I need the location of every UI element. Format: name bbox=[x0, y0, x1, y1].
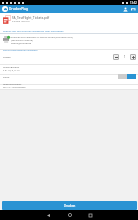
staticText: FA_TestFlight_Tickets.pdf bbox=[12, 16, 50, 20]
button[interactable]: Seiten/Bereich bbox=[0, 64, 138, 75]
button[interactable]: Printer settings bbox=[129, 5, 137, 13]
button[interactable]: alle Druckeroptionen anzeigen bbox=[0, 47, 138, 52]
button[interactable]: Drucken bbox=[2, 201, 137, 210]
staticText: 13:52 bbox=[130, 1, 137, 5]
staticText: Farbe bbox=[3, 75, 10, 78]
button[interactable]: Recents bbox=[80, 210, 101, 220]
button[interactable]: Increase copies bbox=[130, 54, 136, 60]
staticText: 1 bbox=[124, 55, 126, 59]
staticText: Seiten/Bereich bbox=[3, 65, 20, 68]
button[interactable]: Kopien bbox=[0, 50, 138, 64]
staticText: z. B. 1-5, 8, 11-13 bbox=[3, 69, 20, 72]
staticText: Material/Format bbox=[3, 82, 22, 85]
staticText: DruckerPlug bbox=[9, 7, 28, 11]
button[interactable]: Decrease copies bbox=[113, 54, 119, 60]
staticText: Kopien bbox=[3, 55, 11, 58]
button[interactable]: Material/Format bbox=[0, 84, 138, 89]
button[interactable]: Farbe bbox=[0, 74, 138, 84]
button[interactable]: Home bbox=[59, 210, 80, 220]
button[interactable]: Back bbox=[38, 210, 59, 220]
staticText: Drucken auf Samsung SL-M2070 Series (SEC… bbox=[11, 35, 73, 38]
staticText: admin@printer.de bbox=[11, 41, 32, 44]
staticText: DIN A4 / Normalpapier bbox=[3, 86, 26, 89]
button[interactable]: Account bbox=[121, 5, 129, 13]
staticText: andere App zum Drucken auswählen oder hi… bbox=[3, 29, 64, 32]
button[interactable]: Color toggle bbox=[118, 74, 136, 79]
staticText: Drucken bbox=[64, 204, 76, 208]
button[interactable]: andere App zum Drucken auswählen oder hi… bbox=[0, 28, 138, 33]
button[interactable]: FA_TestFlight_Tickets.pdf bbox=[0, 13, 138, 26]
button[interactable]: Drucken auf Samsung SL-M2070 Series (SEC… bbox=[0, 34, 138, 47]
staticText: (SEC30CDA7C9D38) bbox=[11, 38, 33, 41]
staticText: 4.6.2016 8:54 AM bbox=[12, 20, 30, 23]
staticText: alle Druckeroptionen anzeigen bbox=[3, 48, 38, 51]
